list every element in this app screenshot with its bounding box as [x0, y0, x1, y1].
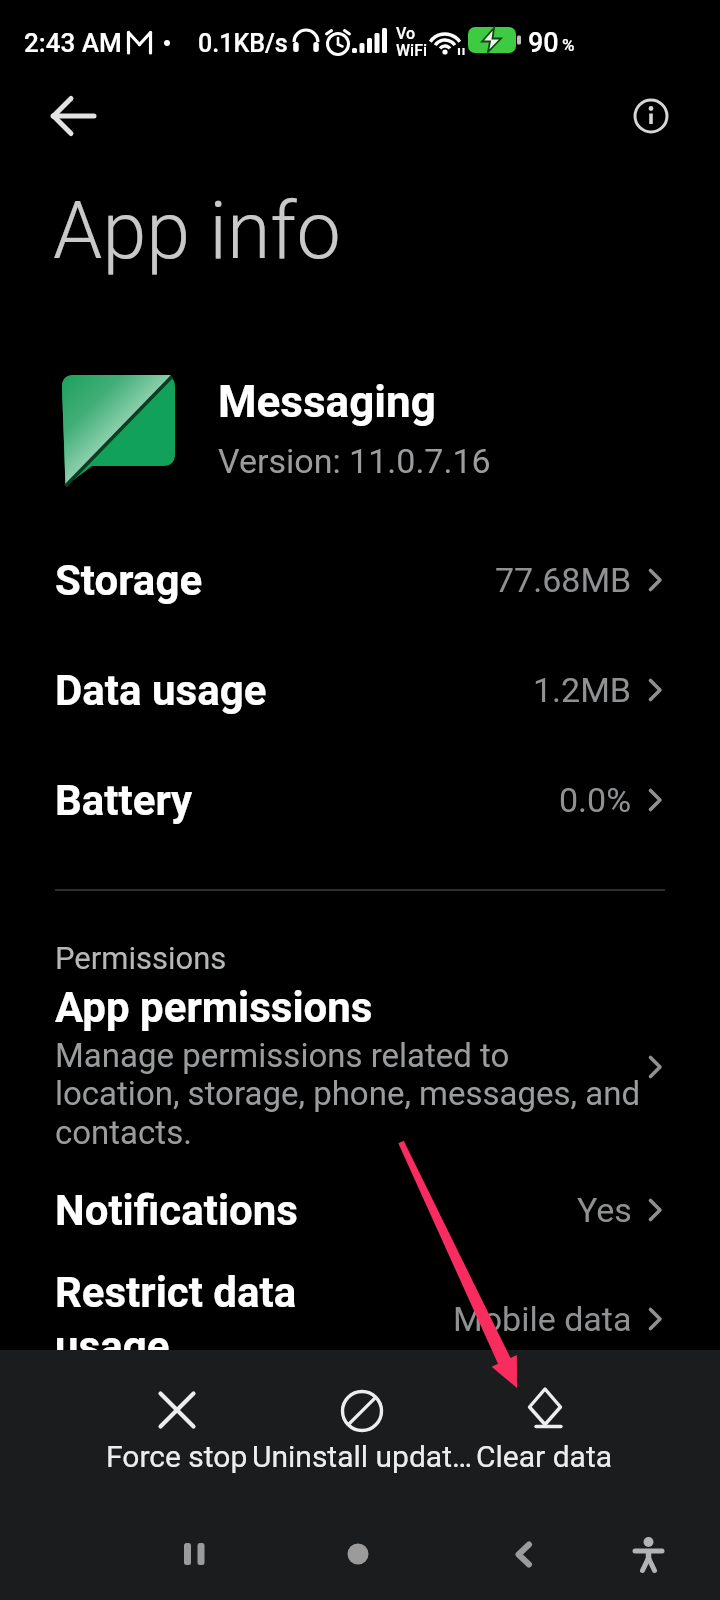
staticText: Notifications: [55, 1186, 298, 1235]
staticText: Clear data: [476, 1439, 613, 1474]
staticText: WiFi: [396, 41, 428, 60]
staticText: Mobile data: [453, 1299, 632, 1339]
staticText: Data usage: [55, 666, 267, 715]
staticText: Restrict data usage: [55, 1268, 297, 1371]
staticText: 0.1KB/s: [198, 29, 288, 58]
staticText: %: [562, 35, 575, 55]
staticText: Storage: [55, 556, 203, 605]
staticText: 1.2MB: [533, 670, 632, 710]
staticText: Vo: [396, 24, 416, 43]
staticText: Version: 11.0.7.16: [218, 441, 491, 481]
staticText: Battery: [55, 776, 193, 825]
staticText: 77.68MB: [495, 560, 632, 600]
staticText: 90: [528, 27, 559, 59]
staticText: App permissions: [55, 983, 373, 1032]
staticText: 0.0%: [559, 780, 632, 820]
staticText: Yes: [577, 1190, 632, 1230]
staticText: Manage permissions related to location, …: [55, 1036, 641, 1153]
staticText: App info: [53, 185, 341, 277]
staticText: Force stop: [106, 1439, 248, 1474]
staticText: Permissions: [55, 940, 227, 976]
staticText: Uninstall updat…: [252, 1439, 473, 1474]
staticText: 2:43 AM: [24, 28, 122, 58]
staticText: Messaging: [218, 376, 436, 428]
